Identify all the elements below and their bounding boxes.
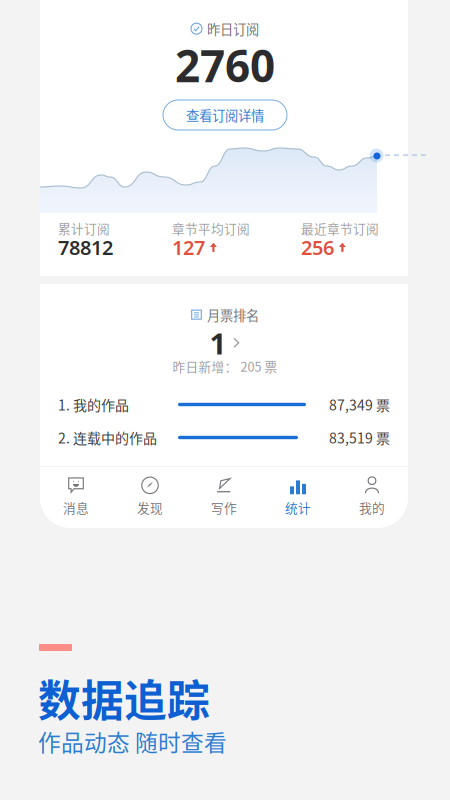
button[interactable]: 发现 [113, 468, 187, 525]
staticText: 累计订阅 [58, 219, 110, 237]
staticText: 发现 [137, 498, 163, 517]
staticText: 昨日订阅 [207, 19, 259, 38]
staticText: 写作 [211, 498, 237, 517]
staticText: 查看订阅详情 [186, 105, 264, 125]
staticText: 我的 [359, 498, 385, 517]
button[interactable]: 我的 [335, 468, 409, 525]
staticText: 作品动态 随时查看 [38, 725, 227, 758]
staticText: 月票排名 [207, 305, 259, 324]
staticText: 最近章节订阅 [301, 219, 379, 237]
staticText: 87,349 票 [329, 394, 390, 415]
staticText: 昨日新增： 205 票 [172, 357, 277, 375]
staticText: 78812 [58, 234, 113, 261]
button[interactable]: 1 [209, 331, 240, 355]
button[interactable]: 统计 [261, 468, 335, 525]
staticText: 1 [209, 323, 226, 362]
staticText: 2. 连载中的作品 [58, 427, 157, 448]
button[interactable]: 查看订阅详情 [163, 100, 287, 130]
staticText: 127 [172, 234, 205, 261]
staticText: 数据追踪 [38, 667, 210, 729]
staticText: 83,519 票 [329, 427, 390, 448]
staticText: 1. 我的作品 [58, 394, 129, 415]
staticText: 2760 [175, 36, 275, 94]
button[interactable]: 消息 [39, 468, 113, 525]
button[interactable]: 写作 [187, 468, 261, 525]
staticText: 章节平均订阅 [172, 219, 250, 237]
staticText: 消息 [63, 498, 89, 517]
button[interactable]: 2. 连载中的作品 [58, 429, 390, 446]
staticText: 统计 [285, 498, 311, 517]
button[interactable]: 1. 我的作品 [58, 396, 390, 413]
staticText: 256 [301, 234, 334, 261]
